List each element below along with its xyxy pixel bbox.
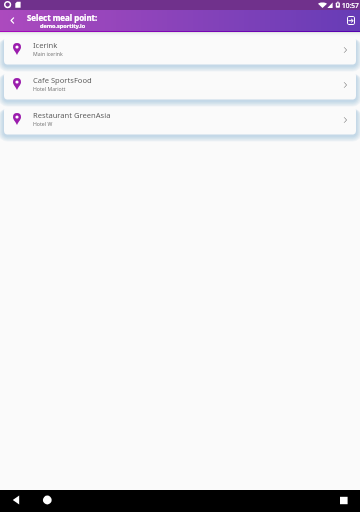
staticText: Cafe SportsFood — [33, 75, 92, 85]
staticText: Select meal point: — [27, 13, 98, 24]
button[interactable]: Icerink — [4, 37, 356, 64]
staticText: Hotel Mariott — [33, 85, 66, 92]
staticText: Restaurant GreenAsia — [33, 110, 111, 120]
button[interactable]: Log out — [342, 10, 360, 31]
staticText: Hotel W — [33, 120, 53, 127]
button[interactable]: Restaurant GreenAsia — [4, 107, 356, 134]
button[interactable]: Cafe SportsFood — [4, 72, 356, 99]
staticText: demo.sportity.io — [40, 22, 86, 29]
button[interactable]: Back — [0, 10, 24, 31]
staticText: Icerink — [33, 40, 58, 50]
staticText: 10:57 — [342, 1, 359, 10]
staticText: Main icerink — [33, 50, 63, 57]
